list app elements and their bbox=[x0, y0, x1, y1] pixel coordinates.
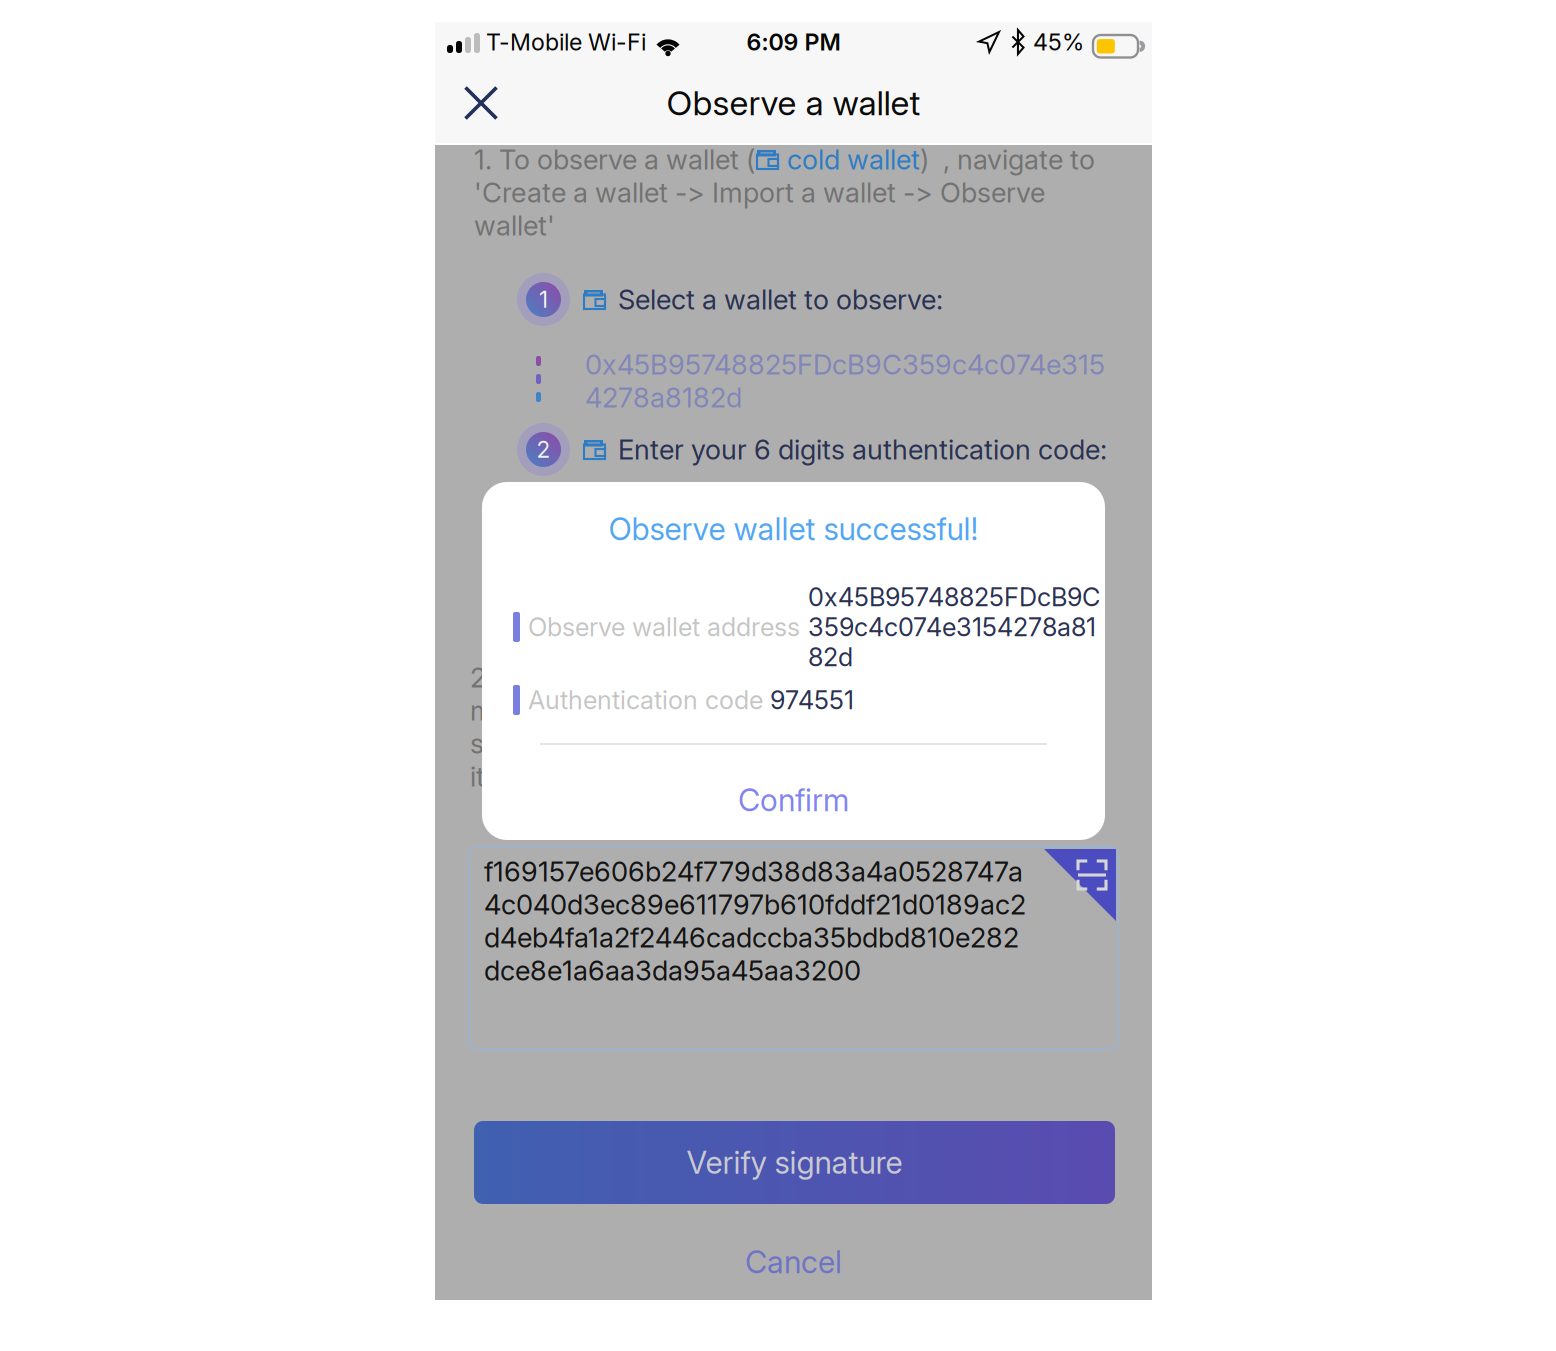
staticText: it via the QR code bbox=[470, 760, 689, 793]
staticText: cold wallet bbox=[780, 143, 920, 176]
staticText: wallet' bbox=[474, 209, 555, 242]
staticText: message, then copy and paste the bbox=[470, 694, 899, 727]
staticText: Observe wallet successful! bbox=[608, 510, 978, 547]
staticText: 6:09 PM bbox=[746, 28, 840, 56]
staticText: 0x45B95748825FDcB9C359c4c074e315 bbox=[585, 348, 1105, 381]
staticText: ) , navigate to bbox=[920, 143, 1095, 176]
staticText: Observe wallet address bbox=[528, 612, 800, 642]
button[interactable]: Verify signature bbox=[474, 1121, 1115, 1204]
staticText: d4eb4fa1a2f2446cadccba35bdbd810e282 bbox=[484, 921, 1019, 954]
staticText: Observe a wallet bbox=[666, 82, 920, 123]
staticText: 82d bbox=[808, 642, 853, 672]
staticText: T-Mobile Wi-Fi bbox=[486, 28, 646, 56]
staticText: Cancel bbox=[745, 1243, 842, 1280]
button[interactable]: Confirm bbox=[482, 760, 1105, 840]
staticText: Enter your 6 digits authentication code: bbox=[618, 433, 1107, 466]
staticText: 2. Use your cold wallet to sign the bbox=[470, 661, 890, 694]
button[interactable]: Cancel bbox=[435, 1232, 1152, 1292]
staticText: 0x45B95748825FDcB9C bbox=[808, 582, 1100, 612]
staticText: Select a wallet to observe: bbox=[618, 283, 943, 316]
staticText: 45% bbox=[1033, 28, 1084, 56]
staticText: Confirm bbox=[738, 781, 849, 818]
staticText: Verify signature bbox=[686, 1144, 902, 1181]
staticText: f169157e606b24f779d38d83a4a0528747a bbox=[484, 855, 1023, 888]
button[interactable]: Close bbox=[435, 63, 527, 143]
staticText: 974551 bbox=[770, 685, 854, 715]
staticText: dce8e1a6aa3da95a45aa3200 bbox=[484, 954, 861, 987]
staticText: 2 bbox=[536, 436, 550, 463]
staticText: 1 bbox=[539, 286, 548, 313]
staticText: 4c040d3ec89e611797b610fddf21d0189ac2 bbox=[484, 888, 1026, 921]
staticText: 'Create a wallet -> Import a wallet -> O… bbox=[474, 176, 1045, 209]
staticText: Authentication code bbox=[528, 685, 763, 715]
staticText: 359c4c074e3154278a81 bbox=[808, 612, 1096, 642]
staticText: 1. To observe a wallet ( bbox=[474, 143, 755, 176]
button[interactable]: Scan signature bbox=[1044, 849, 1116, 921]
staticText: signature into the box below, or scan bbox=[470, 727, 926, 760]
staticText: 4278a8182d bbox=[585, 381, 742, 414]
